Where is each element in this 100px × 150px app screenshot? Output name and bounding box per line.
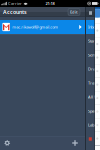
staticText: Spam bbox=[88, 108, 98, 114]
button[interactable]: Spam bbox=[86, 104, 95, 118]
button[interactable]: Drafts bbox=[86, 62, 95, 76]
staticText: Accounts bbox=[3, 8, 27, 16]
button[interactable]: Labels bbox=[86, 118, 95, 132]
button[interactable]: Starred bbox=[86, 34, 95, 48]
button[interactable]: Inbox bbox=[86, 20, 95, 34]
staticText: Drafts bbox=[88, 66, 99, 72]
staticText: All Mail bbox=[88, 94, 100, 100]
staticText: Sent bbox=[88, 52, 95, 58]
button[interactable]: Sent bbox=[86, 48, 95, 62]
staticText: Starred bbox=[88, 38, 100, 44]
button[interactable]: Settings bbox=[1, 136, 13, 150]
button[interactable]: Add account bbox=[69, 136, 81, 150]
staticText: 21:18 bbox=[45, 1, 54, 6]
staticText: Trash bbox=[88, 80, 98, 86]
staticText: Edit bbox=[70, 9, 78, 15]
button[interactable] bbox=[86, 132, 95, 146]
button[interactable]: mac.rikawolf@gmail.com bbox=[0, 20, 85, 34]
staticText: mac.rikawolf@gmail.com bbox=[12, 24, 58, 30]
button[interactable]: All Mail bbox=[86, 90, 95, 104]
button[interactable]: Trash bbox=[86, 76, 95, 90]
button[interactable] bbox=[86, 146, 95, 150]
staticText: Labels bbox=[88, 122, 99, 128]
staticText: Carrier bbox=[8, 1, 22, 6]
button[interactable]: Edit bbox=[68, 9, 80, 15]
staticText: Inbox bbox=[88, 24, 97, 30]
